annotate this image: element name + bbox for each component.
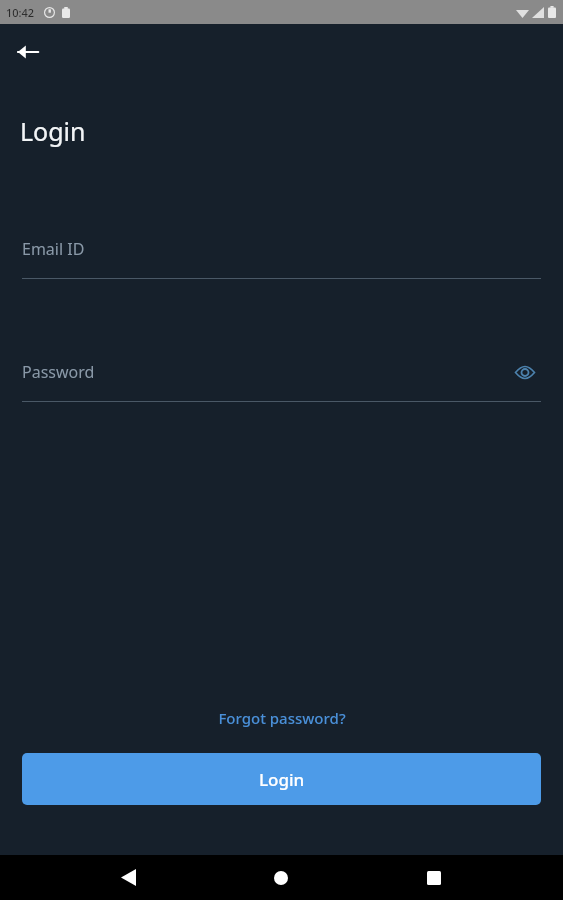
- button[interactable]: Back: [8, 32, 48, 72]
- staticText: 10:42: [6, 5, 35, 20]
- staticText: Password: [22, 361, 95, 383]
- staticText: Login: [259, 768, 305, 791]
- button[interactable]: Show password: [509, 357, 541, 387]
- button[interactable]: Login: [22, 753, 541, 805]
- staticText: Forgot password?: [218, 708, 346, 728]
- button[interactable]: Back: [104, 855, 152, 900]
- staticText: Login: [20, 114, 86, 148]
- button[interactable]: Forgot password?: [212, 705, 352, 731]
- button[interactable]: Home: [257, 855, 305, 900]
- button[interactable]: Recent apps: [410, 855, 458, 900]
- staticText: Email ID: [22, 238, 85, 260]
